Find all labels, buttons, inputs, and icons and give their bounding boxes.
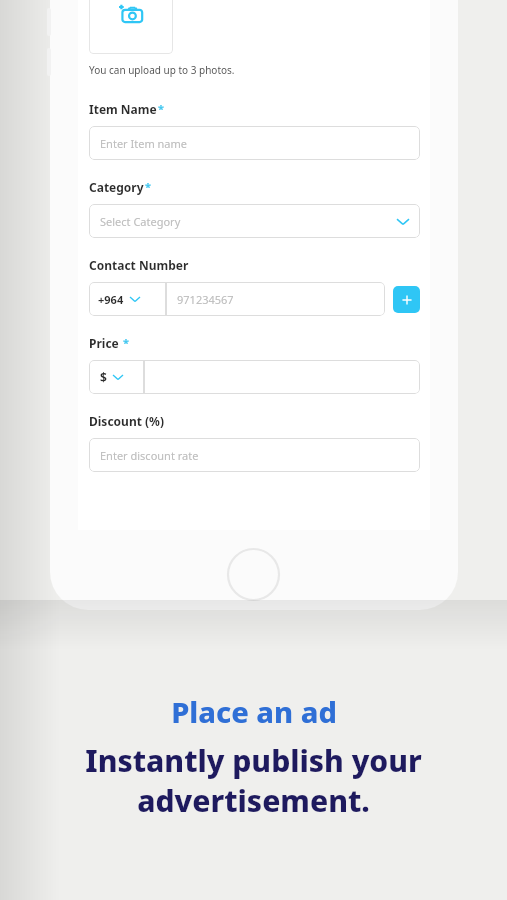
staticText: Item Name bbox=[89, 101, 157, 117]
staticText: Place an ad bbox=[171, 692, 337, 731]
button[interactable]: Enter discount rate bbox=[89, 438, 420, 472]
staticText: * bbox=[158, 101, 164, 116]
staticText: You can upload up to 3 photos. bbox=[89, 63, 235, 77]
staticText: * bbox=[145, 179, 151, 194]
button[interactable]: Select Category bbox=[89, 204, 420, 238]
staticText: Category bbox=[89, 179, 144, 195]
button[interactable]: +964 bbox=[89, 282, 166, 316]
staticText: 971234567 bbox=[177, 292, 234, 307]
staticText: Select Category bbox=[100, 214, 181, 229]
staticText: Enter discount rate bbox=[100, 448, 199, 463]
button[interactable]: 971234567 bbox=[166, 282, 385, 316]
button[interactable]: Upload photo bbox=[89, 0, 173, 54]
button[interactable] bbox=[144, 360, 420, 394]
button[interactable]: Enter Item name bbox=[89, 126, 420, 160]
staticText: +964 bbox=[98, 292, 124, 307]
button[interactable]: Add contact number bbox=[393, 286, 420, 313]
staticText: Enter Item name bbox=[100, 136, 187, 151]
staticText: Contact Number bbox=[89, 257, 189, 273]
staticText: $ bbox=[100, 369, 107, 385]
staticText: Discount (%) bbox=[89, 413, 164, 429]
button[interactable]: $ bbox=[89, 360, 144, 394]
staticText: Instantly publish your advertisement. bbox=[85, 740, 422, 821]
staticText: * bbox=[123, 335, 129, 350]
staticText: Price bbox=[89, 335, 122, 351]
